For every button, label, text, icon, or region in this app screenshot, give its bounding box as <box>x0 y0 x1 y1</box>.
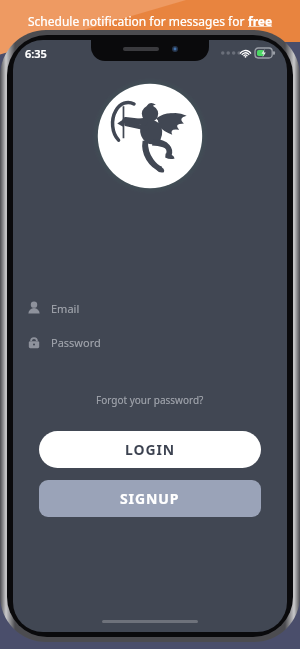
staticText: Forgot your password? <box>96 393 204 407</box>
staticText: Password <box>51 335 101 350</box>
staticText: Schedule notification for messages for <box>28 13 248 29</box>
staticText: SIGNUP <box>120 489 180 508</box>
other: Password field <box>27 335 41 349</box>
staticText: 6:35 <box>25 46 47 61</box>
button[interactable]: Password field <box>27 331 273 353</box>
button[interactable]: Email field <box>27 297 273 319</box>
staticText: LOGIN <box>125 440 176 459</box>
button[interactable]: SIGNUP <box>39 480 261 517</box>
staticText: free <box>248 13 273 29</box>
other: Email field <box>27 301 41 315</box>
button[interactable]: LOGIN <box>39 431 261 468</box>
button[interactable]: Forgot your password? <box>13 393 287 407</box>
staticText: Email <box>51 301 80 316</box>
button[interactable]: Schedule notification for messages for <box>0 0 300 42</box>
